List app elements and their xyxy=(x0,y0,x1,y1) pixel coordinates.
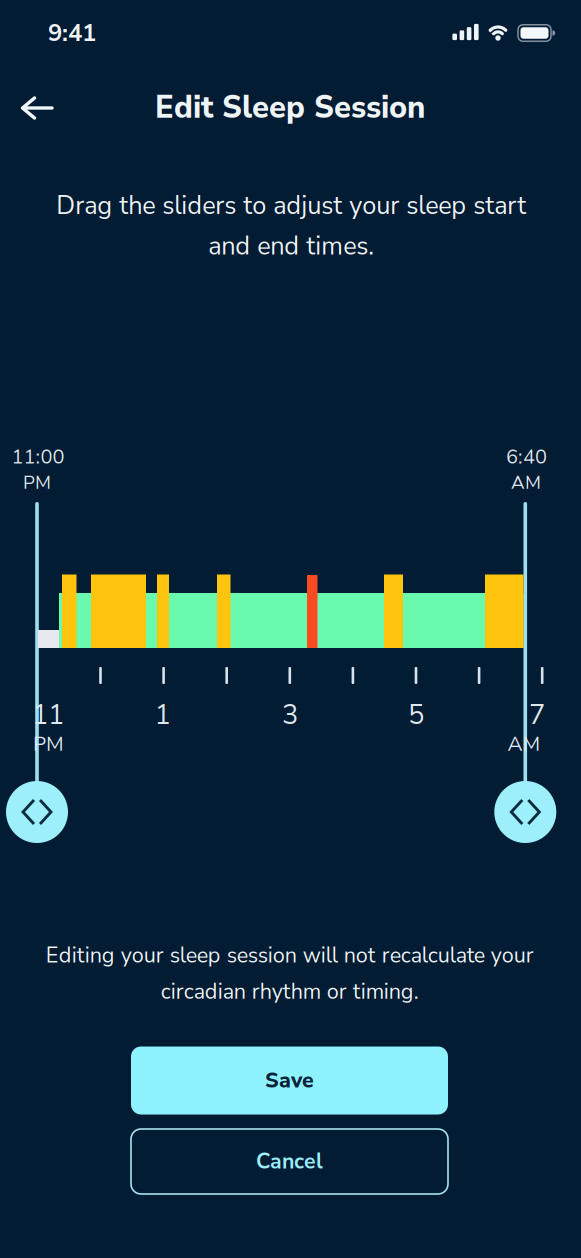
staticText: PM xyxy=(33,730,64,758)
button[interactable]: Adjust sleep start time xyxy=(6,781,68,843)
staticText: 5 xyxy=(408,696,424,734)
staticText: 1 xyxy=(154,696,170,734)
staticText: AM xyxy=(511,470,541,495)
staticText: Drag the sliders to adjust your sleep st… xyxy=(56,188,526,263)
button[interactable]: Back xyxy=(0,86,60,130)
button[interactable]: Adjust sleep end time xyxy=(494,781,556,843)
staticText: 6:40 xyxy=(506,443,547,471)
staticText: 9:41 xyxy=(48,17,96,49)
staticText: AM xyxy=(507,730,540,758)
staticText: Cancel xyxy=(256,1147,323,1176)
staticText: Save xyxy=(265,1066,314,1095)
staticText: 11:00 xyxy=(11,443,64,471)
button[interactable]: Save xyxy=(131,1046,448,1114)
staticText: 3 xyxy=(282,696,298,734)
button[interactable]: Cancel xyxy=(131,1129,448,1194)
staticText: 11 xyxy=(32,696,64,734)
staticText: Editing your sleep session will not reca… xyxy=(45,940,533,1006)
staticText: Edit Sleep Session xyxy=(155,86,425,129)
staticText: PM xyxy=(23,470,51,495)
staticText: 7 xyxy=(529,696,545,734)
